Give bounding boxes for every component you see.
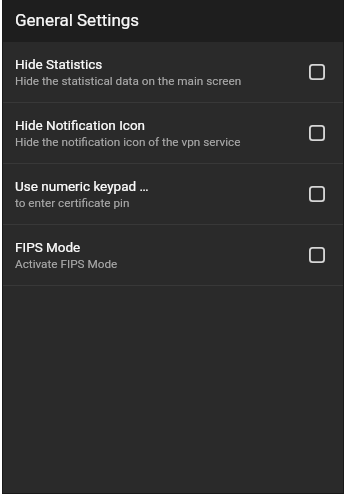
staticText: Hide the notification icon of the vpn se… xyxy=(15,135,241,149)
staticText: Hide Notification Icon xyxy=(15,117,146,133)
staticText: Activate FIPS Mode xyxy=(15,257,118,271)
button[interactable]: Toggle Use numeric keypad … xyxy=(291,164,343,224)
staticText: Use numeric keypad … xyxy=(15,178,149,194)
button[interactable]: Toggle Hide Statistics xyxy=(291,42,343,102)
button[interactable]: Toggle FIPS Mode xyxy=(291,225,343,285)
staticText: Hide the statistical data on the main sc… xyxy=(15,74,242,88)
button[interactable]: Hide Notification Icon xyxy=(3,103,343,163)
staticText: to enter certificate pin xyxy=(15,196,130,210)
button[interactable]: Toggle Hide Notification Icon xyxy=(291,103,343,163)
staticText: General Settings xyxy=(15,10,140,30)
button[interactable]: Hide Statistics xyxy=(3,42,343,102)
staticText: Hide Statistics xyxy=(15,56,103,72)
button[interactable]: Use numeric keypad … xyxy=(3,164,343,224)
staticText: FIPS Mode xyxy=(15,239,81,255)
button[interactable]: FIPS Mode xyxy=(3,225,343,285)
